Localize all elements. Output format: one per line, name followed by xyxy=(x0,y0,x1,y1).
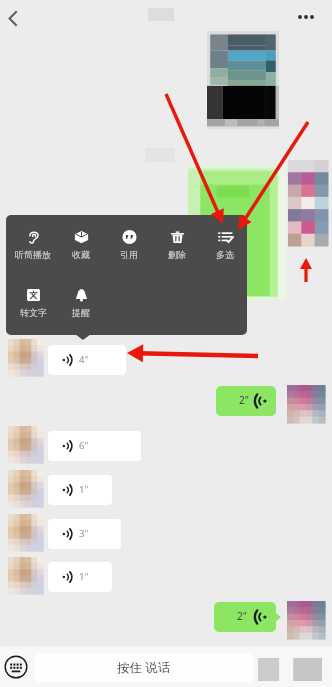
staticText: 听筒播放 xyxy=(15,249,51,260)
button[interactable]: 6" xyxy=(48,431,141,461)
button[interactable]: 提醒 xyxy=(57,282,105,326)
button[interactable]: Keyboard xyxy=(4,655,28,679)
button[interactable]: 转文字 xyxy=(9,282,57,326)
staticText: 4" xyxy=(79,353,89,366)
button[interactable]: 1" xyxy=(48,475,112,505)
staticText: 提醒 xyxy=(72,307,90,318)
staticText: 转文字 xyxy=(20,307,47,318)
staticText: 收藏 xyxy=(72,249,90,260)
button[interactable]: 收藏 xyxy=(57,224,105,268)
staticText: 3" xyxy=(79,527,89,540)
button[interactable]: 多选 xyxy=(201,224,249,268)
staticText: 2" xyxy=(237,609,247,623)
button[interactable]: 按住 说话 xyxy=(35,653,253,682)
button[interactable]: 2" xyxy=(214,602,276,632)
button[interactable]: 引用 xyxy=(105,224,153,268)
staticText: 1" xyxy=(79,483,89,496)
button[interactable]: 删除 xyxy=(153,224,201,268)
button[interactable]: 2" xyxy=(216,386,276,416)
button[interactable]: Back xyxy=(0,2,30,32)
button[interactable]: 1" xyxy=(48,562,112,592)
staticText: 按住 说话 xyxy=(117,659,171,676)
button[interactable]: 3" xyxy=(48,519,121,549)
button[interactable]: 听筒播放 xyxy=(9,224,57,268)
staticText: 删除 xyxy=(168,249,186,260)
staticText: 6" xyxy=(79,439,89,452)
staticText: 引用 xyxy=(120,249,138,260)
button[interactable]: 4" xyxy=(48,345,126,375)
button[interactable]: More options xyxy=(292,5,320,29)
staticText: 2" xyxy=(239,393,249,407)
staticText: 多选 xyxy=(216,249,234,260)
staticText: 1" xyxy=(79,570,89,583)
